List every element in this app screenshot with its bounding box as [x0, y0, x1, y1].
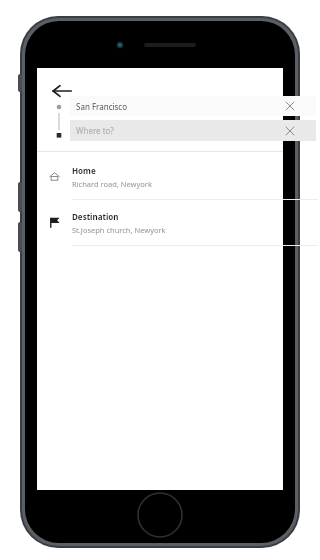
button[interactable]: Destination [37, 200, 283, 245]
staticText: Richard road, Newyork [72, 179, 152, 189]
button[interactable]: Clear [280, 96, 300, 116]
staticText: St.Joseph church, Newyork [72, 225, 166, 235]
other: Destination [37, 217, 72, 228]
other: Home [37, 171, 72, 182]
button[interactable]: San Francisco [70, 96, 316, 116]
staticText: San Francisco [76, 101, 280, 112]
staticText: Where to? [76, 125, 279, 136]
button[interactable]: Clear [279, 120, 300, 141]
staticText: Home [72, 165, 96, 176]
button[interactable]: Home [37, 154, 283, 199]
button[interactable]: Where to? [70, 120, 316, 141]
staticText: Destination [72, 211, 119, 222]
button[interactable]: Back [45, 74, 79, 108]
